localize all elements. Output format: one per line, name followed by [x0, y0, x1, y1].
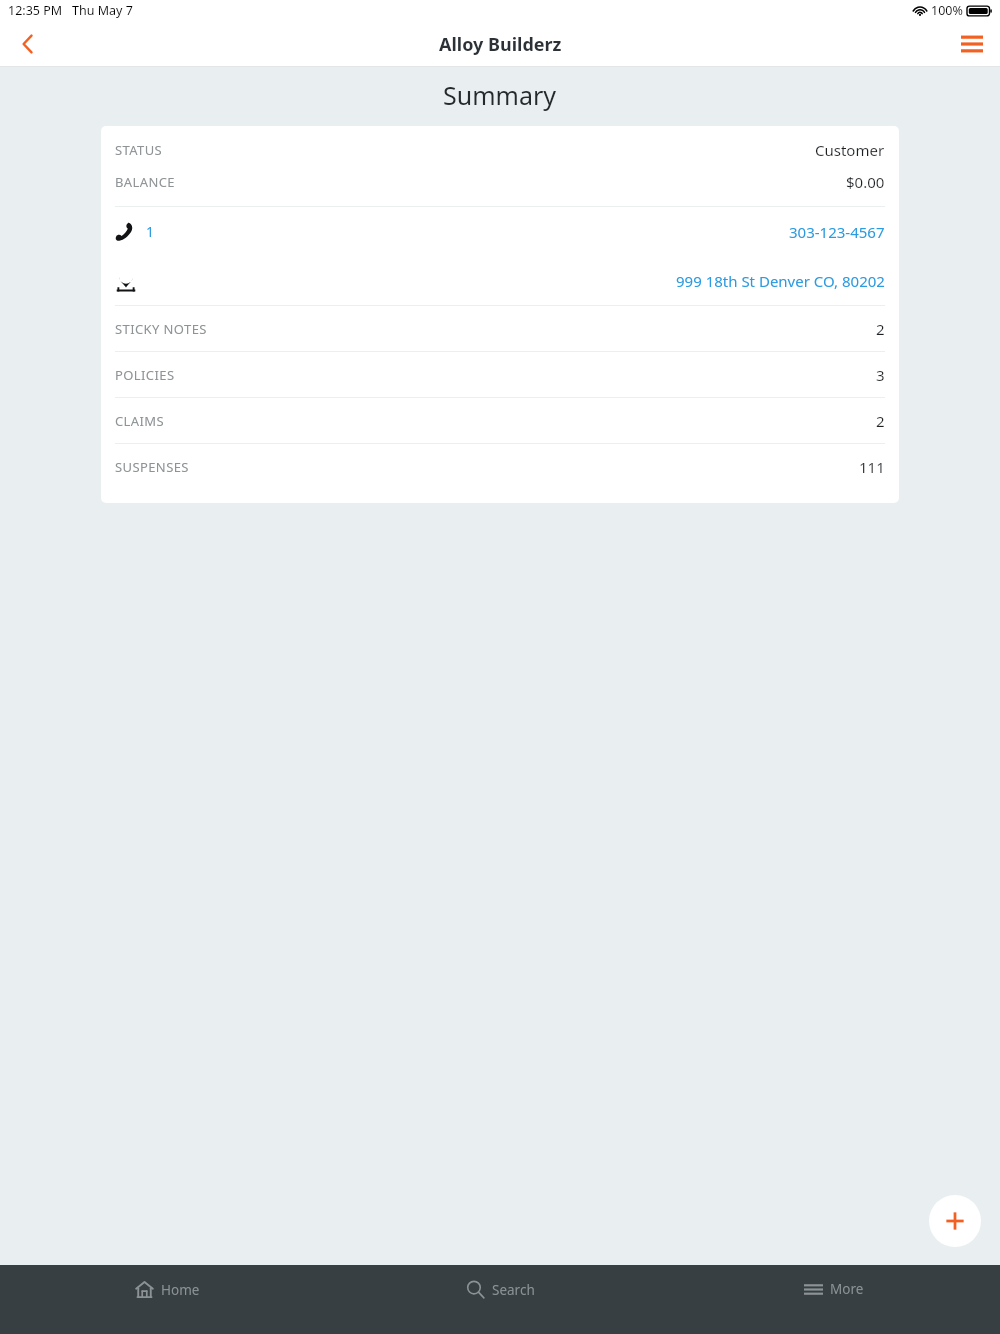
- button[interactable]: CLAIMS: [101, 398, 899, 443]
- staticText: Home: [161, 1281, 200, 1299]
- staticText: Alloy Builderz: [439, 32, 562, 57]
- button[interactable]: BALANCE: [101, 172, 899, 192]
- staticText: POLICIES: [115, 366, 175, 384]
- button[interactable]: Home: [0, 1265, 334, 1334]
- staticText: STATUS: [115, 141, 163, 159]
- button[interactable]: SUSPENSES: [101, 444, 899, 489]
- staticText: 999 18th St Denver CO, 80202: [676, 271, 885, 291]
- staticText: 2: [876, 319, 885, 339]
- button[interactable]: STATUS: [101, 140, 899, 160]
- staticText: BALANCE: [115, 173, 176, 191]
- button[interactable]: 999 18th St Denver CO, 80202: [101, 256, 899, 305]
- button[interactable]: STICKY NOTES: [101, 306, 899, 351]
- staticText: Customer: [815, 140, 885, 160]
- button[interactable]: Search: [334, 1265, 667, 1334]
- staticText: 2: [876, 411, 885, 431]
- staticText: CLAIMS: [115, 412, 165, 430]
- staticText: 100%: [931, 2, 963, 19]
- staticText: More: [830, 1280, 864, 1298]
- staticText: Summary: [443, 78, 557, 112]
- staticText: 1: [146, 222, 155, 241]
- button[interactable]: More: [667, 1265, 1000, 1334]
- staticText: 3: [876, 365, 885, 385]
- staticText: 12:35 PM: [8, 2, 63, 19]
- staticText: Search: [492, 1281, 535, 1299]
- button[interactable]: POLICIES: [101, 352, 899, 397]
- button[interactable]: 1: [101, 207, 899, 256]
- staticText: SUSPENSES: [115, 458, 189, 476]
- staticText: STICKY NOTES: [115, 320, 207, 338]
- button[interactable]: Add: [929, 1195, 981, 1247]
- staticText: 111: [859, 457, 885, 477]
- staticText: Thu May 7: [72, 2, 133, 19]
- staticText: $0.00: [846, 172, 885, 192]
- button[interactable]: Back: [0, 21, 56, 67]
- staticText: 303-123-4567: [789, 222, 885, 242]
- button[interactable]: Menu: [944, 21, 1000, 67]
